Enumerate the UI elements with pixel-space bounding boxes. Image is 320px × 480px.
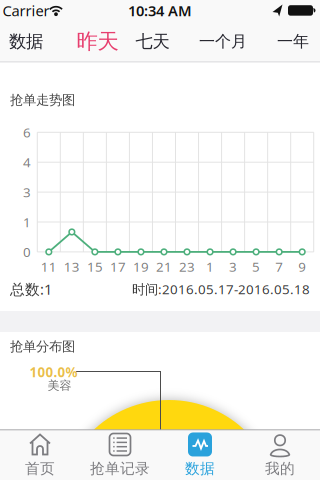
staticText: 13 <box>64 258 80 275</box>
staticText: 100.0% <box>29 363 77 381</box>
staticText: 10:34 AM <box>128 1 192 20</box>
staticText: 数据 <box>9 31 43 52</box>
staticText: 3 <box>229 258 237 275</box>
staticText: 9 <box>298 258 306 275</box>
staticText: 数据 <box>185 459 215 477</box>
staticText: 6 <box>23 123 31 141</box>
staticText: 21 <box>156 258 172 275</box>
staticText: 总数:1 <box>10 279 52 299</box>
staticText: 七天 <box>135 31 169 52</box>
staticText: 一个月 <box>199 32 247 51</box>
staticText: 23 <box>179 258 195 275</box>
staticText: 0 <box>23 243 31 261</box>
staticText: 11 <box>41 258 57 275</box>
button[interactable]: 一年 <box>277 32 309 51</box>
staticText: 17 <box>110 258 126 275</box>
staticText: 美容 <box>47 378 71 393</box>
button[interactable]: 我的 <box>265 432 295 477</box>
button[interactable]: 数据 <box>9 31 43 52</box>
button[interactable]: 一个月 <box>199 32 247 51</box>
button[interactable]: 抢单记录 <box>90 432 150 477</box>
staticText: 首页 <box>25 459 55 477</box>
staticText: 4 <box>23 153 31 171</box>
staticText: 1 <box>206 258 214 275</box>
staticText: 抢单记录 <box>90 459 150 477</box>
staticText: Carrier <box>2 1 49 20</box>
button[interactable]: 首页 <box>25 432 55 477</box>
button[interactable]: 昨天 <box>76 28 118 55</box>
staticText: 19 <box>133 258 149 275</box>
staticText: 我的 <box>265 459 295 477</box>
staticText: 抢单分布图 <box>10 338 75 355</box>
staticText: 时间:2016.05.17-2016.05.18 <box>132 280 310 298</box>
button[interactable]: 数据 <box>185 432 215 477</box>
staticText: 7 <box>275 258 283 275</box>
button[interactable]: 七天 <box>135 31 169 52</box>
staticText: 1 <box>23 213 31 231</box>
staticText: 抢单走势图 <box>10 92 75 108</box>
staticText: 5 <box>252 258 260 275</box>
staticText: 15 <box>87 258 103 275</box>
staticText: 3 <box>23 183 31 201</box>
staticText: 一年 <box>277 32 309 51</box>
staticText: 昨天 <box>76 28 118 55</box>
